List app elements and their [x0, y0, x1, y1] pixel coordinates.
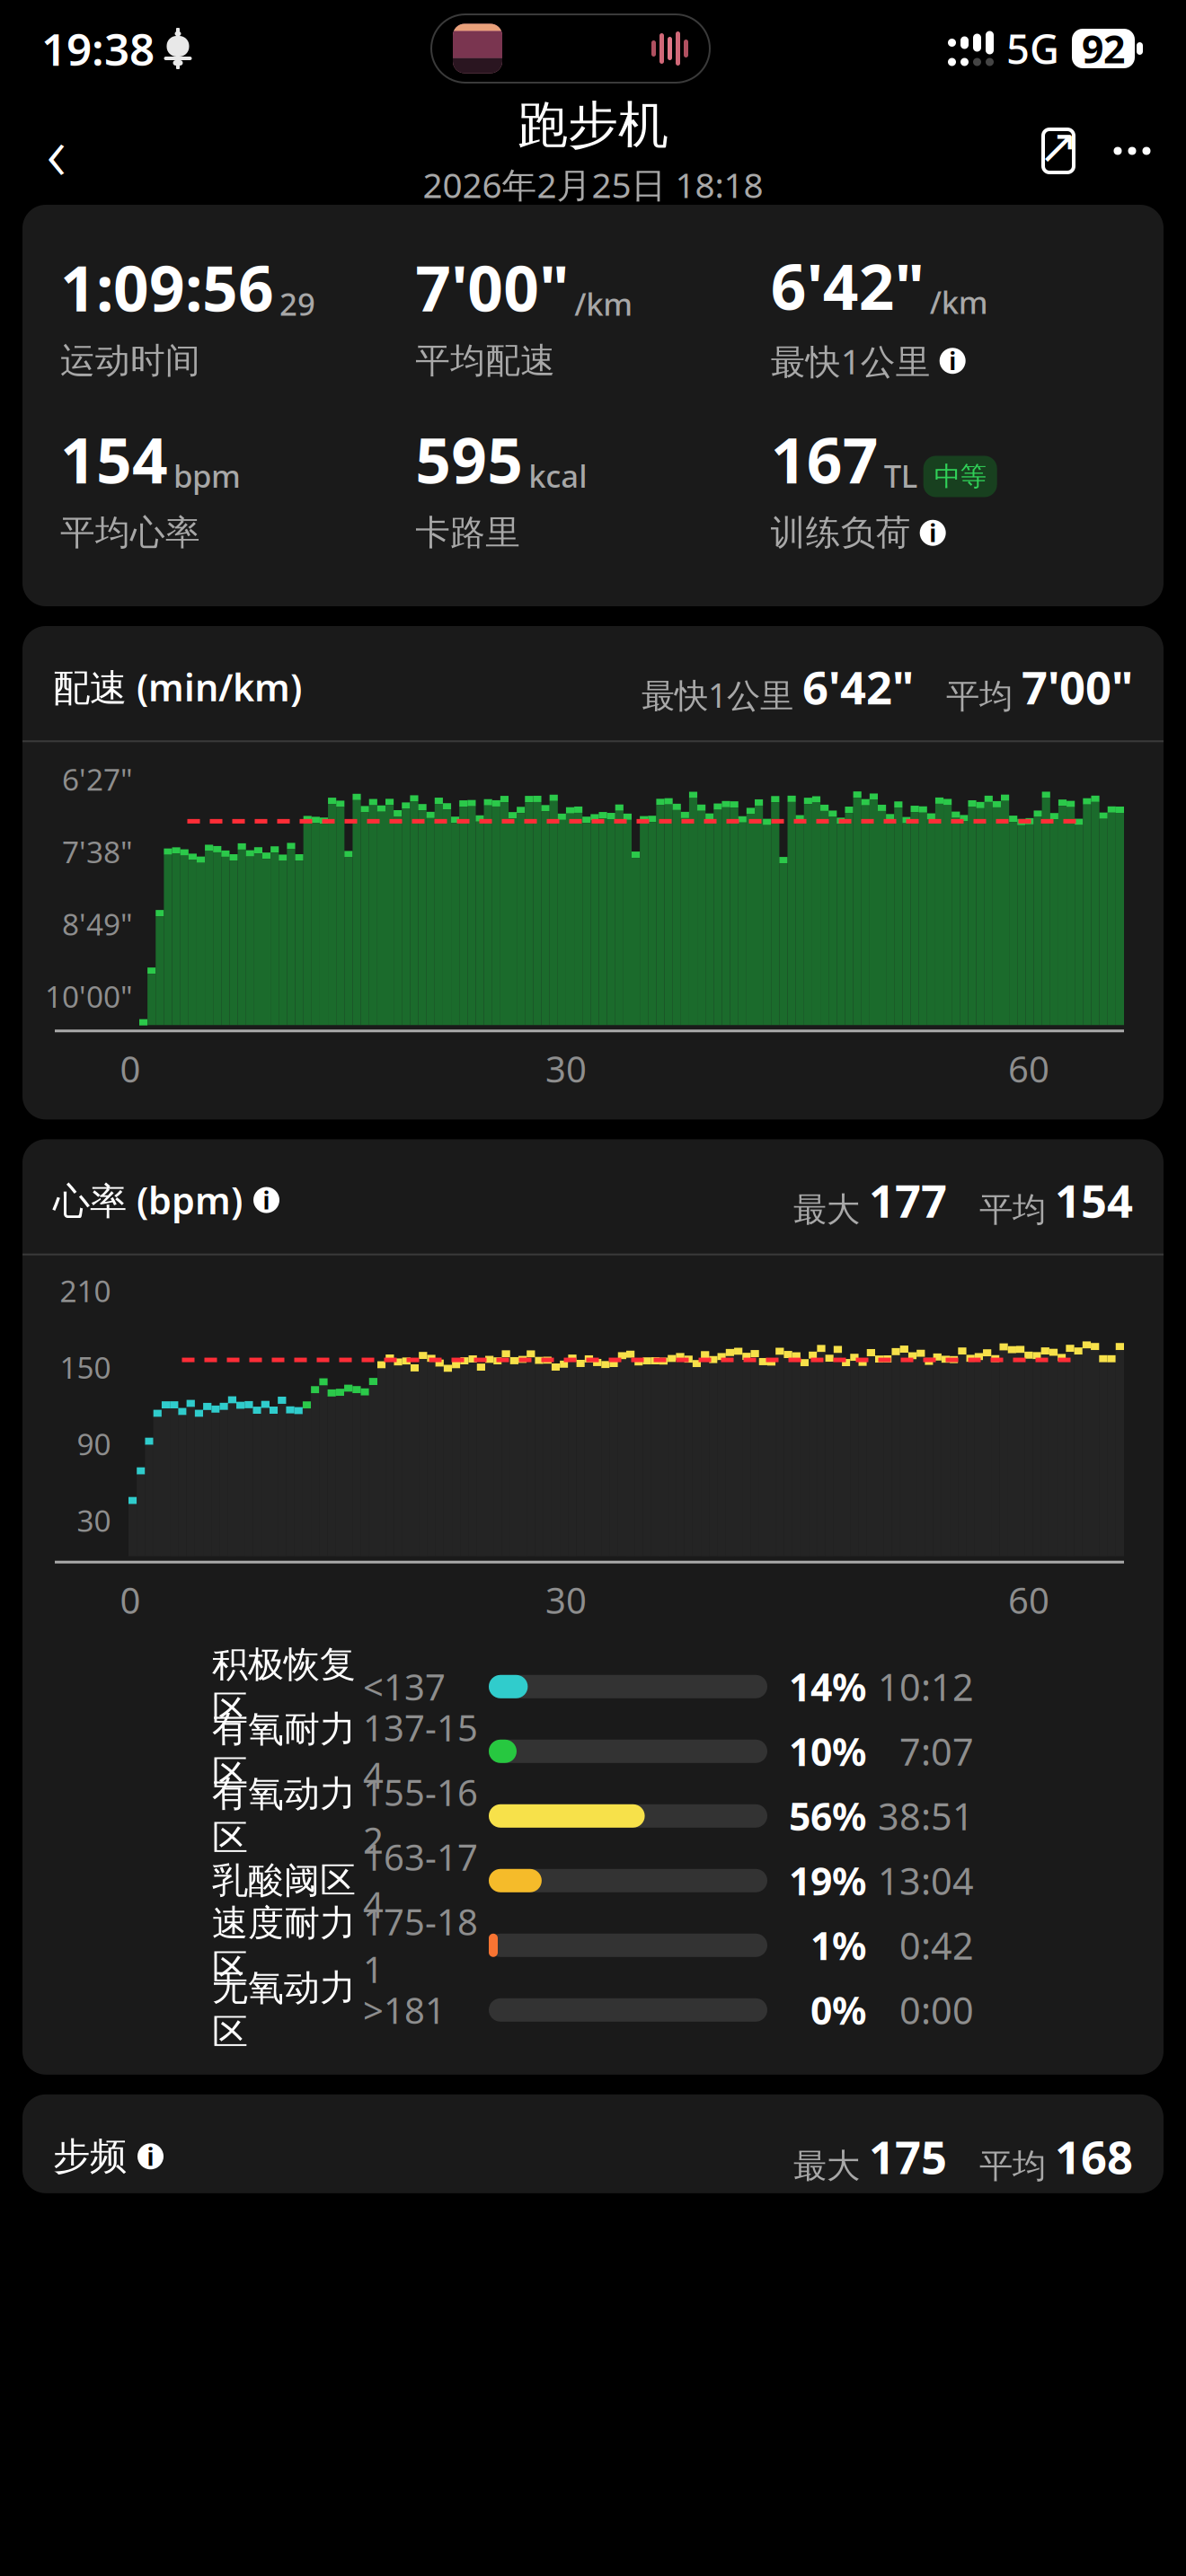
staticText: ‹ [46, 100, 67, 202]
staticText: 13:04 [878, 1856, 974, 1905]
staticText: 168 [1055, 2126, 1133, 2187]
button[interactable]: 分享 [1022, 112, 1094, 190]
staticText: 卡路里 [415, 512, 520, 554]
staticText: 10% [789, 1726, 866, 1777]
staticText: 平均配速 [415, 340, 556, 382]
button[interactable]: 返回 [16, 110, 97, 191]
staticText: 60 [1008, 1576, 1049, 1624]
staticText: 154 [1055, 1170, 1133, 1230]
staticText: <137 [363, 1663, 446, 1710]
staticText: 30 [77, 1500, 111, 1540]
staticText: 30 [545, 1045, 587, 1093]
staticText: 最大 [793, 1189, 860, 1230]
staticText: 150 [60, 1347, 111, 1387]
staticText: 167 [771, 418, 878, 501]
staticText: 177 [869, 1170, 947, 1230]
staticText: i [147, 2140, 154, 2172]
staticText: 有氧动力区 [212, 1772, 356, 1860]
staticText: 6'27" [62, 759, 133, 799]
staticText: 0% [810, 1985, 866, 2035]
staticText: 积极恢复区 [212, 1643, 356, 1731]
staticText: i [929, 517, 936, 549]
staticText: 7'00" [1022, 657, 1133, 717]
staticText: 14% [789, 1661, 866, 1712]
staticText: 154 [60, 418, 168, 501]
staticText: 8'49" [62, 904, 133, 944]
staticText: 60 [1008, 1045, 1049, 1093]
staticText: 5G [1006, 21, 1059, 76]
staticText: 步频 [53, 2134, 127, 2179]
staticText: 19% [789, 1855, 866, 1906]
staticText: 19:38 [41, 19, 155, 78]
staticText: 最大 [793, 2145, 860, 2187]
staticText: 1:09:56 [60, 246, 274, 329]
staticText: 平均 [979, 2145, 1046, 2187]
staticText: /km [574, 283, 633, 324]
staticText: 0 [120, 1045, 141, 1093]
staticText: bpm [173, 455, 241, 496]
staticText: 心率 (bpm) [53, 1175, 243, 1225]
staticText: 2026年2月25日 18:18 [423, 161, 763, 207]
staticText: 训练负荷 [771, 512, 911, 554]
staticText: 137-154 [363, 1704, 478, 1799]
staticText: ↗ [1038, 119, 1079, 174]
staticText: 7:07 [899, 1727, 974, 1776]
staticText: 最快1公里 [771, 338, 931, 384]
staticText: >181 [363, 1986, 446, 2034]
staticText: i [949, 345, 956, 377]
staticText: 7'38" [62, 832, 133, 871]
staticText: i [263, 1184, 270, 1216]
staticText: 0 [120, 1576, 141, 1624]
staticText: 210 [60, 1271, 111, 1310]
staticText: TL [884, 455, 918, 496]
staticText: 1% [810, 1920, 866, 1971]
staticText: 56% [789, 1791, 866, 1841]
staticText: /km [930, 281, 988, 322]
staticText: 10'00" [45, 976, 133, 1016]
staticText: 38:51 [878, 1791, 974, 1841]
staticText: 配速 (min/km) [53, 662, 302, 711]
staticText: 163-174 [363, 1833, 478, 1928]
staticText: 175-181 [363, 1898, 478, 1993]
staticText: 0:42 [899, 1921, 974, 1970]
staticText: 中等 [934, 460, 986, 493]
staticText: 速度耐力区 [212, 1901, 356, 1989]
staticText: 运动时间 [60, 340, 200, 382]
staticText: 7'00" [415, 246, 569, 329]
staticText: 平均心率 [60, 512, 200, 554]
staticText: 6'42" [771, 244, 924, 327]
staticText: 0:00 [899, 1985, 974, 2035]
staticText: 跑步机 [518, 94, 668, 156]
staticText: 90 [77, 1424, 111, 1464]
staticText: 平均 [946, 676, 1013, 717]
staticText: 155-162 [363, 1768, 478, 1864]
staticText: 175 [869, 2126, 947, 2187]
staticText: 6'42" [802, 657, 914, 717]
staticText: 乳酸阈区 [212, 1859, 356, 1903]
staticText: kcal [529, 455, 587, 496]
staticText: 92 [1082, 23, 1125, 74]
staticText: 有氧耐力区 [212, 1707, 356, 1795]
staticText: 30 [545, 1576, 587, 1624]
staticText: 平均 [979, 1189, 1046, 1230]
staticText: 29 [279, 283, 315, 324]
staticText: 10:12 [878, 1662, 974, 1711]
staticText: 无氧动力区 [212, 1966, 356, 2054]
button[interactable]: 更多 [1094, 112, 1170, 190]
staticText: 595 [415, 418, 523, 501]
staticText: 最快1公里 [642, 672, 793, 717]
